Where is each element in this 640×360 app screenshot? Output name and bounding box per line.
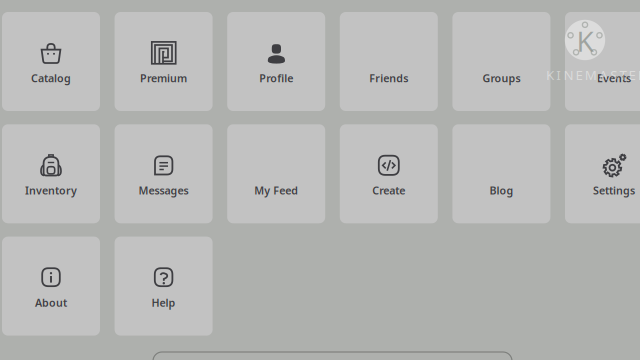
staticText: Groups: [482, 71, 520, 85]
button[interactable]: [153, 352, 512, 360]
staticText: Blog: [489, 183, 513, 197]
button[interactable]: Groups: [452, 12, 550, 111]
staticText: E: [576, 66, 583, 84]
staticText: Events: [597, 71, 631, 85]
button[interactable]: Premium: [115, 12, 213, 111]
staticText: I: [556, 66, 561, 84]
staticText: T: [619, 66, 626, 84]
button[interactable]: Events: [565, 12, 640, 111]
staticText: S: [610, 66, 617, 84]
button[interactable]: Inventory: [2, 124, 100, 223]
staticText: Premium: [140, 71, 187, 85]
staticText: K: [546, 66, 554, 84]
staticText: Inventory: [25, 183, 77, 197]
button[interactable]: About: [2, 237, 100, 336]
staticText: K: [576, 22, 593, 60]
staticText: Friends: [369, 71, 408, 85]
staticText: R: [638, 66, 640, 84]
button[interactable]: My Feed: [227, 124, 325, 223]
button[interactable]: Friends: [340, 12, 438, 111]
button[interactable]: Settings: [565, 124, 640, 223]
staticText: N: [563, 66, 573, 84]
button[interactable]: Profile: [227, 12, 325, 111]
button[interactable]: Blog: [452, 124, 550, 223]
staticText: Create: [372, 183, 405, 197]
staticText: Profile: [259, 71, 293, 85]
button[interactable]: Catalog: [2, 12, 100, 111]
staticText: My Feed: [254, 183, 298, 197]
button[interactable]: Create: [340, 124, 438, 223]
staticText: Catalog: [31, 71, 71, 85]
button[interactable]: Help: [115, 237, 213, 336]
staticText: Help: [152, 295, 176, 310]
staticText: Settings: [593, 183, 635, 197]
staticText: E: [629, 66, 636, 84]
button[interactable]: Messages: [115, 124, 213, 223]
staticText: A: [599, 66, 608, 84]
staticText: M: [585, 66, 597, 84]
staticText: About: [35, 295, 67, 310]
staticText: Messages: [139, 183, 189, 197]
